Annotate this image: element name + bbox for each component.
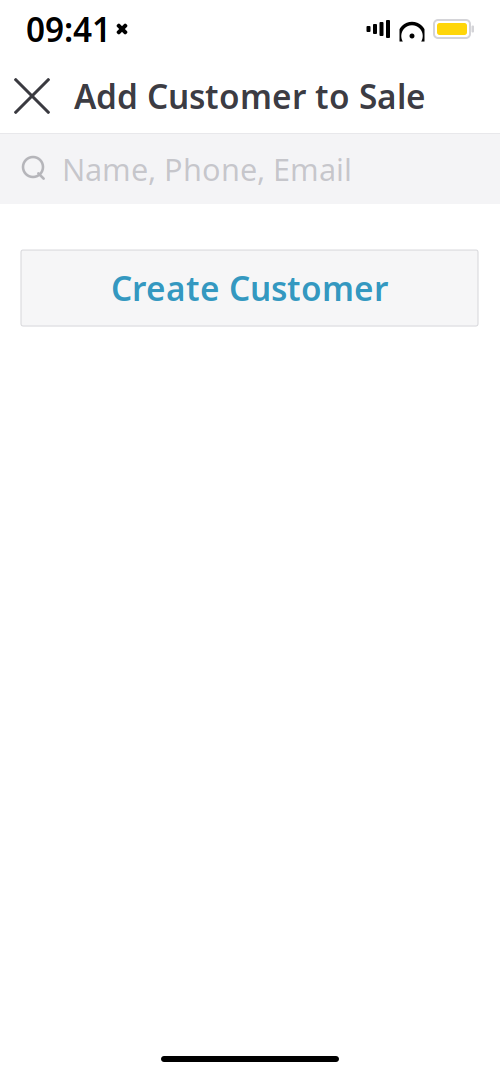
staticText: 09:41 <box>26 7 111 51</box>
staticText: Create Customer <box>111 266 388 310</box>
staticText: Add Customer to Sale <box>74 74 426 118</box>
button[interactable]: Create Customer <box>21 250 478 326</box>
staticText: Name, Phone, Email <box>62 149 352 189</box>
button[interactable]: Name, Phone, Email <box>0 134 500 204</box>
button[interactable]: Close <box>0 63 64 129</box>
